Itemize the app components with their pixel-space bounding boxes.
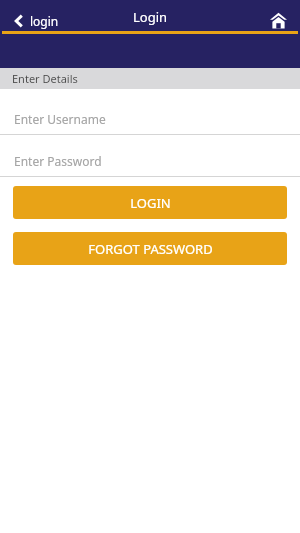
button[interactable]: Enter Username <box>0 104 300 134</box>
button[interactable]: Home <box>264 6 292 34</box>
button[interactable]: FORGOT PASSWORD <box>13 232 287 265</box>
button[interactable]: Enter Password <box>0 146 300 176</box>
staticText: FORGOT PASSWORD <box>88 240 213 258</box>
button[interactable]: login <box>10 10 63 32</box>
staticText: Enter Username <box>14 111 106 127</box>
button[interactable]: Login <box>0 0 300 34</box>
staticText: Login <box>133 8 168 26</box>
staticText: Enter Password <box>14 153 102 169</box>
staticText: login <box>30 13 59 29</box>
button[interactable]: LOGIN <box>13 186 287 219</box>
staticText: LOGIN <box>130 194 171 212</box>
staticText: Enter Details <box>12 71 78 86</box>
